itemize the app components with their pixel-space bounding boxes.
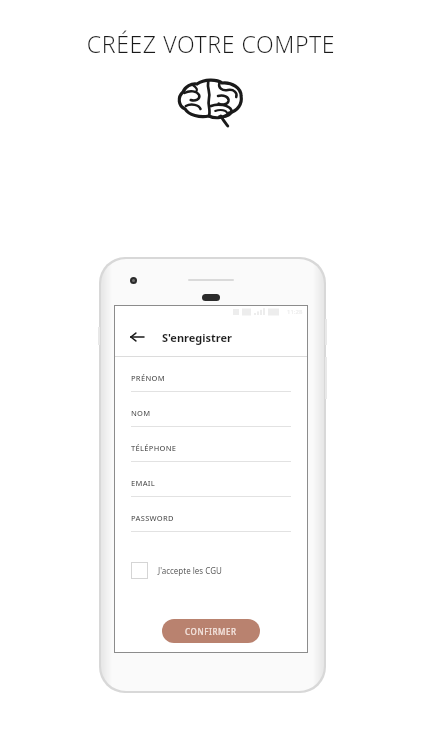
staticText: PASSWORD [131, 513, 174, 523]
button[interactable]: EMAIL [131, 478, 291, 513]
other: Brain logo [176, 78, 246, 128]
staticText: TÉLÉPHONE [131, 443, 177, 453]
button[interactable]: CONFIRMER [162, 619, 260, 643]
button[interactable]: PASSWORD [131, 513, 291, 548]
staticText: CRÉEZ VOTRE COMPTE [0, 28, 422, 59]
staticText: 11:28 [287, 308, 303, 316]
button[interactable]: TÉLÉPHONE [131, 443, 291, 478]
button[interactable]: NOM [131, 408, 291, 443]
button[interactable]: PRÉNOM [131, 373, 291, 408]
staticText: NOM [131, 408, 151, 418]
button[interactable]: Back [126, 326, 148, 348]
staticText: EMAIL [131, 478, 156, 488]
staticText: J'accepte les CGU [158, 565, 222, 576]
staticText: PRÉNOM [131, 373, 165, 383]
staticText: CONFIRMER [185, 626, 237, 637]
button[interactable]: J'accepte les CGU [131, 562, 291, 579]
staticText: S'enregistrer [162, 330, 233, 345]
